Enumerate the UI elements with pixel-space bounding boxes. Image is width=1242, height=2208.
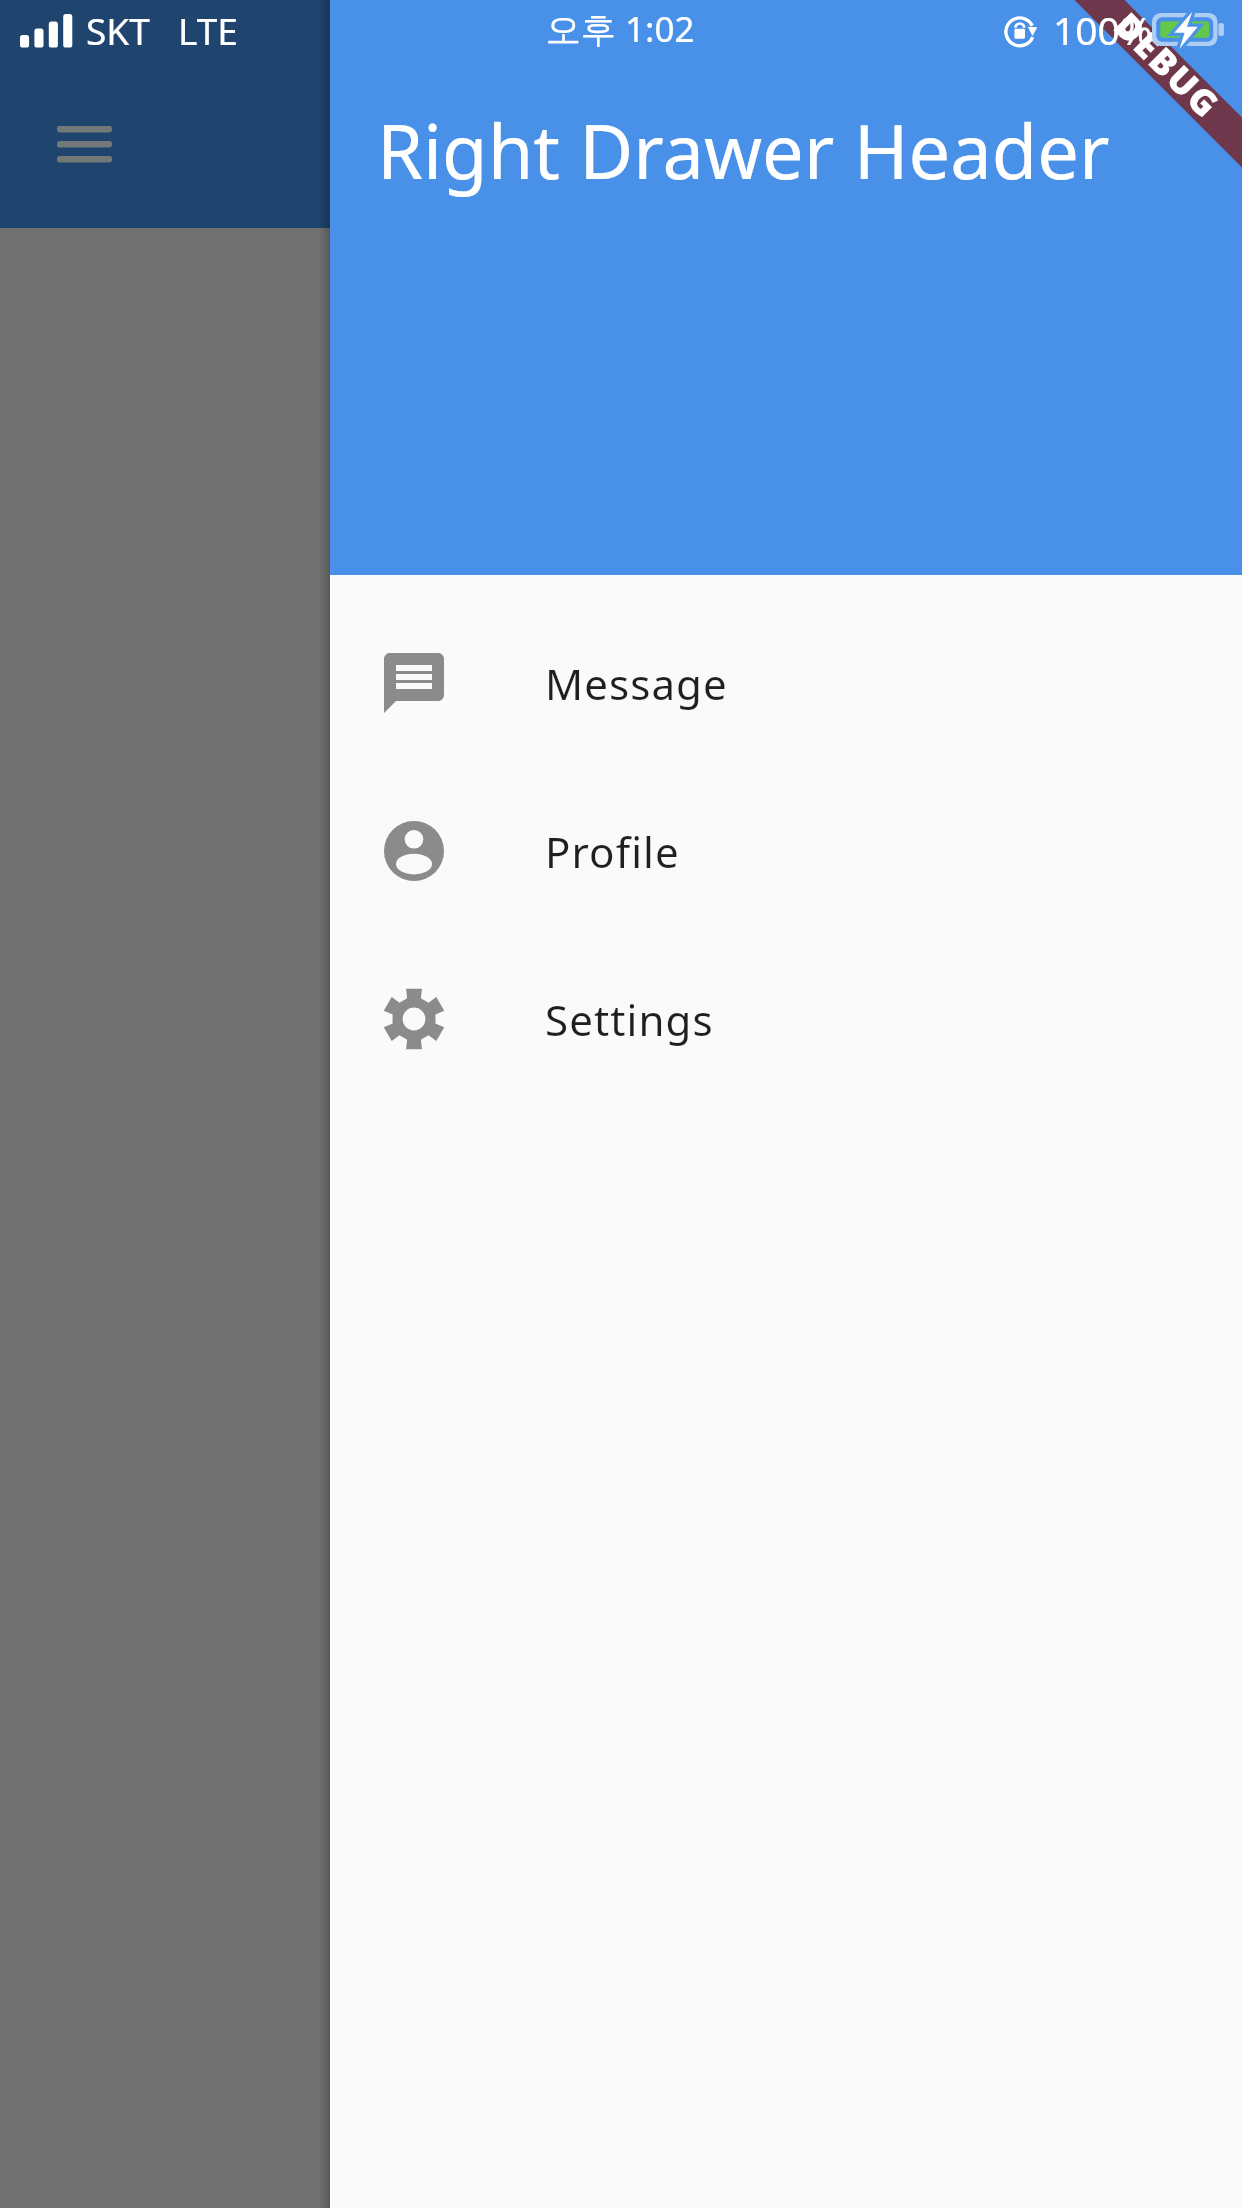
staticText: Right Drawer Header [377, 100, 1110, 201]
button[interactable]: Open navigation drawer [29, 89, 139, 199]
button[interactable]: Profile [330, 767, 1242, 935]
staticText: 100% [1053, 3, 1153, 56]
other: Rotation lock [1000, 12, 1040, 52]
staticText: SKT [86, 5, 150, 55]
staticText: DEBUG [1104, 2, 1231, 129]
staticText: Profile [545, 823, 680, 880]
staticText: 오후 1:02 [546, 5, 695, 53]
staticText: Settings [545, 991, 714, 1048]
button[interactable]: Settings [330, 935, 1242, 1103]
other: Signal strength [20, 14, 74, 48]
staticText: Message [545, 655, 728, 712]
staticText: LTE [178, 5, 238, 55]
button[interactable]: Message [330, 599, 1242, 767]
